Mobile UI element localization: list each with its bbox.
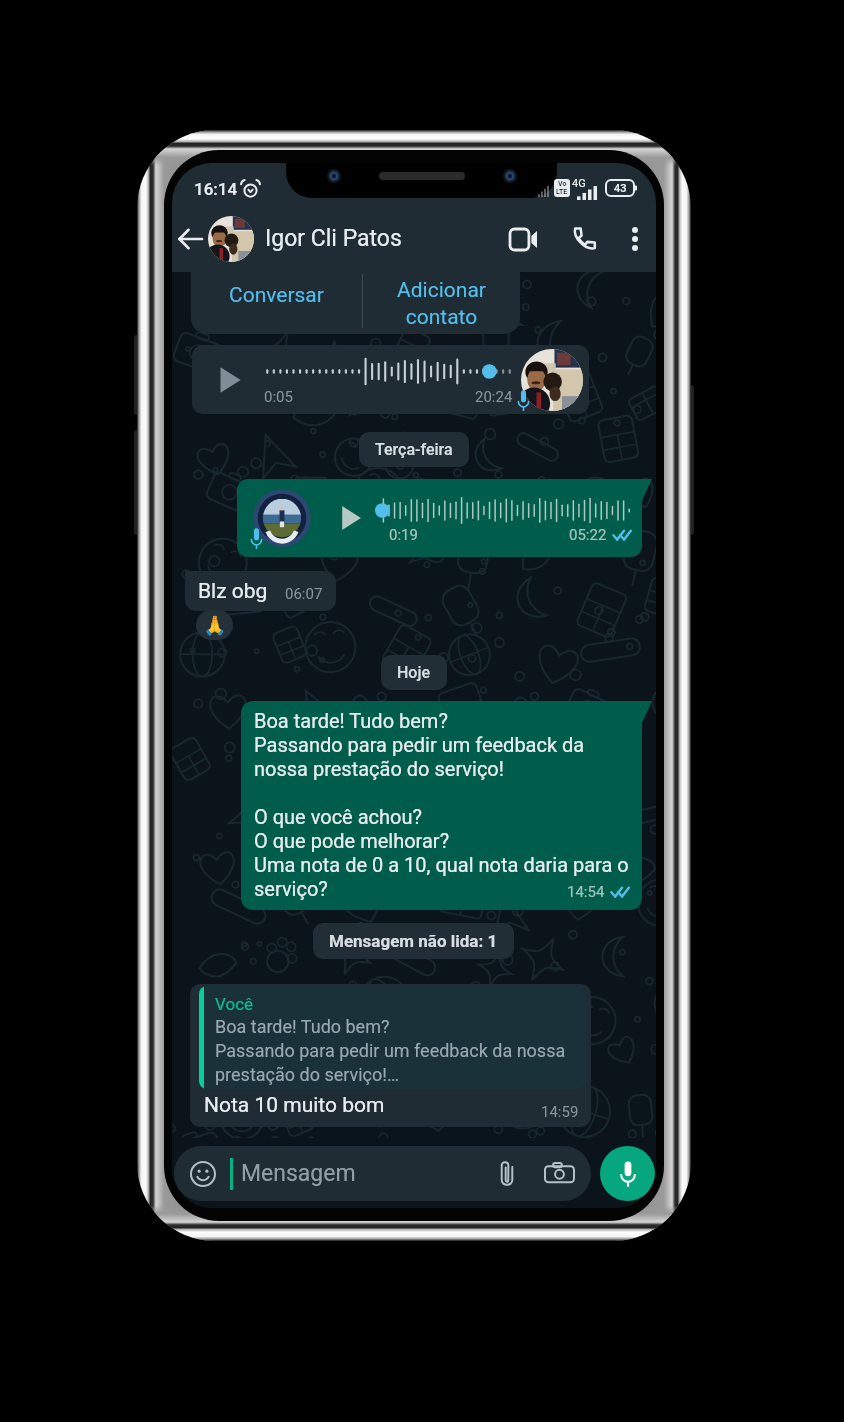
button[interactable]: Blz obg xyxy=(185,571,336,611)
button[interactable]: Mensagem não lida: 1 xyxy=(313,923,514,959)
staticText: Nota 10 muito bom xyxy=(204,1093,385,1118)
staticText: Igor Cli Patos xyxy=(265,225,402,252)
button[interactable]: Hoje xyxy=(381,655,447,690)
staticText: 20:24 xyxy=(475,388,513,406)
button[interactable]: Call xyxy=(564,216,604,262)
button[interactable]: Voice message xyxy=(600,1146,655,1201)
staticText: Vo xyxy=(558,180,567,188)
button[interactable]: Terça-feira xyxy=(359,432,469,467)
staticText: 14:59 xyxy=(541,1103,579,1121)
staticText: 05:22 xyxy=(569,526,607,544)
staticText: Mensagem não lida: 1 xyxy=(329,931,498,951)
button[interactable]: Video call xyxy=(502,216,544,262)
button[interactable]: Emoji xyxy=(190,1161,216,1187)
staticText: Blz obg xyxy=(198,579,268,604)
button[interactable]: Play xyxy=(216,364,244,396)
button[interactable]: Play xyxy=(192,345,589,414)
staticText: Adicionar contato xyxy=(397,278,486,329)
staticText: Boa tarde! Tudo bem? Passando para pedir… xyxy=(215,1016,566,1085)
staticText: LTE xyxy=(556,188,568,196)
button[interactable]: More options xyxy=(622,217,648,261)
button[interactable]: Attach xyxy=(496,1160,518,1187)
button[interactable]: Você xyxy=(190,984,591,1127)
staticText: 06:07 xyxy=(285,585,323,603)
staticText: Terça-feira xyxy=(375,440,453,459)
staticText: Hoje xyxy=(397,663,431,682)
staticText: Conversar xyxy=(229,283,324,308)
staticText: 🙏 xyxy=(203,614,227,636)
button[interactable]: Conversar xyxy=(191,272,362,334)
button[interactable]: Boa tarde! Tudo bem? Passando para pedir… xyxy=(241,701,642,910)
button[interactable]: Back xyxy=(174,217,205,261)
staticText: 14:54 xyxy=(567,883,605,901)
staticText: Mensagem xyxy=(241,1160,356,1187)
button[interactable]: 🙏 xyxy=(196,610,233,640)
staticText: 4G xyxy=(572,177,586,190)
staticText: Você xyxy=(215,994,254,1014)
button[interactable]: Adicionar contato xyxy=(363,272,520,334)
button[interactable]: Play xyxy=(338,503,364,533)
button[interactable]: Emoji xyxy=(174,1146,591,1201)
staticText: 0:19 xyxy=(389,526,418,544)
staticText: 16:14 xyxy=(194,179,238,199)
staticText: 43 xyxy=(614,182,627,195)
staticText: Boa tarde! Tudo bem? Passando para pedir… xyxy=(254,709,630,901)
button[interactable]: Camera xyxy=(545,1161,574,1187)
staticText: 0:05 xyxy=(264,388,293,406)
button[interactable]: Play xyxy=(237,479,642,557)
